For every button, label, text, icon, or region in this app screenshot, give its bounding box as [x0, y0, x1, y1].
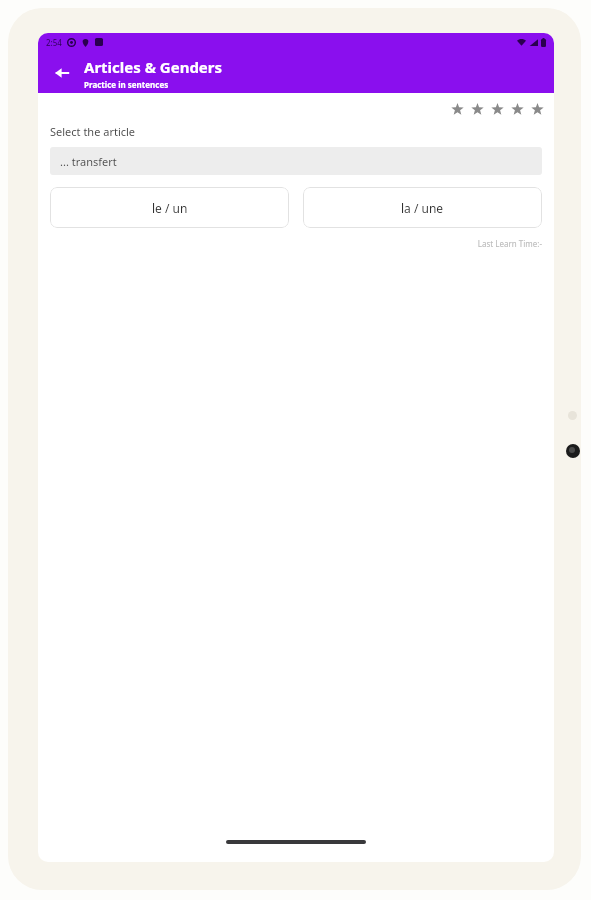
button[interactable]: la / une [303, 187, 542, 228]
staticText: ... transfert [60, 154, 117, 169]
button[interactable]: Back [44, 55, 80, 91]
staticText: 2:54 [46, 37, 62, 48]
staticText: Select the article [50, 124, 136, 139]
staticText: Practice in sentences [84, 79, 169, 90]
staticText: la / une [401, 200, 444, 216]
button[interactable]: le / un [50, 187, 289, 228]
staticText: Last Learn Time:- [38, 238, 542, 249]
staticText: Articles & Genders [84, 57, 223, 77]
staticText: le / un [152, 200, 188, 216]
